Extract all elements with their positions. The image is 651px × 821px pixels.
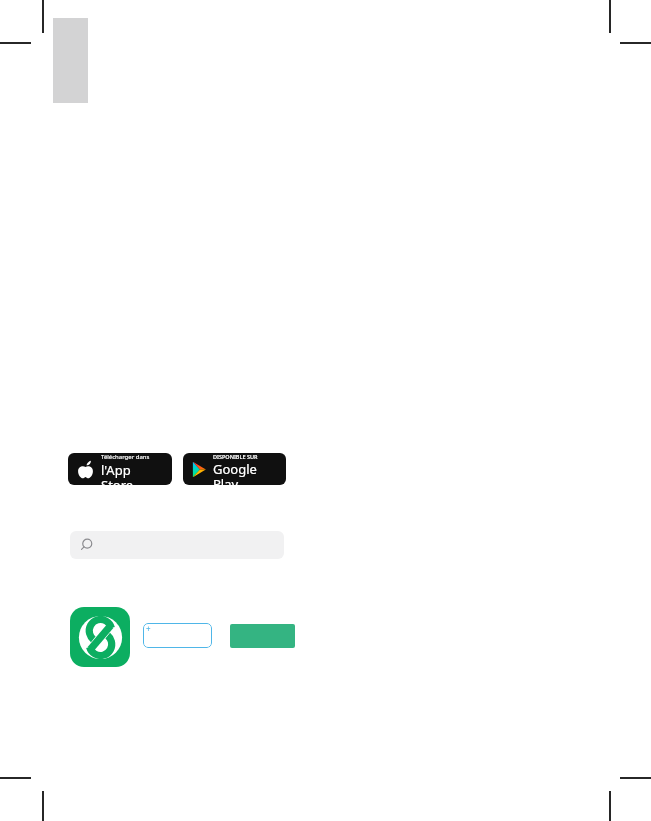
other: Search: [79, 538, 94, 553]
staticText: Google Play: [213, 460, 280, 485]
button[interactable]: App logo: [70, 607, 130, 667]
staticText: DISPONIBLE SUR: [213, 453, 258, 460]
button[interactable]: Disponible sur Google Play: [183, 453, 286, 485]
staticText: Télécharger dans: [101, 453, 150, 461]
button[interactable]: Search: [70, 531, 284, 559]
staticText: l'App Store: [101, 461, 165, 485]
button[interactable]: Submit: [230, 624, 295, 648]
staticText: +: [146, 623, 151, 634]
button[interactable]: Phone number: [143, 623, 212, 648]
button[interactable]: Télécharger dans l'App Store: [68, 453, 172, 485]
